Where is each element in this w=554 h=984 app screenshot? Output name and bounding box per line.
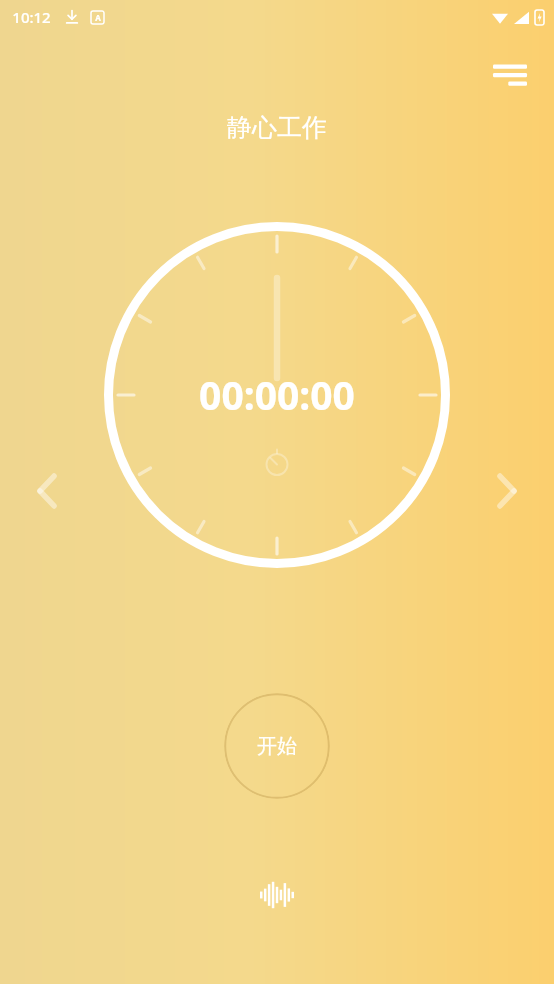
button[interactable]: Previous xyxy=(16,460,78,522)
staticText: 开始 xyxy=(257,734,297,759)
button[interactable]: 开始 xyxy=(224,693,330,799)
staticText: 静心工作 xyxy=(227,112,327,143)
button[interactable]: Next xyxy=(476,460,538,522)
staticText: 10:12 xyxy=(12,7,51,27)
button[interactable]: Sound xyxy=(246,864,308,926)
button[interactable]: Stopwatch xyxy=(255,441,299,485)
staticText: A xyxy=(95,12,101,23)
staticText: 00:00:00 xyxy=(199,368,355,421)
button[interactable]: Menu xyxy=(480,44,540,104)
